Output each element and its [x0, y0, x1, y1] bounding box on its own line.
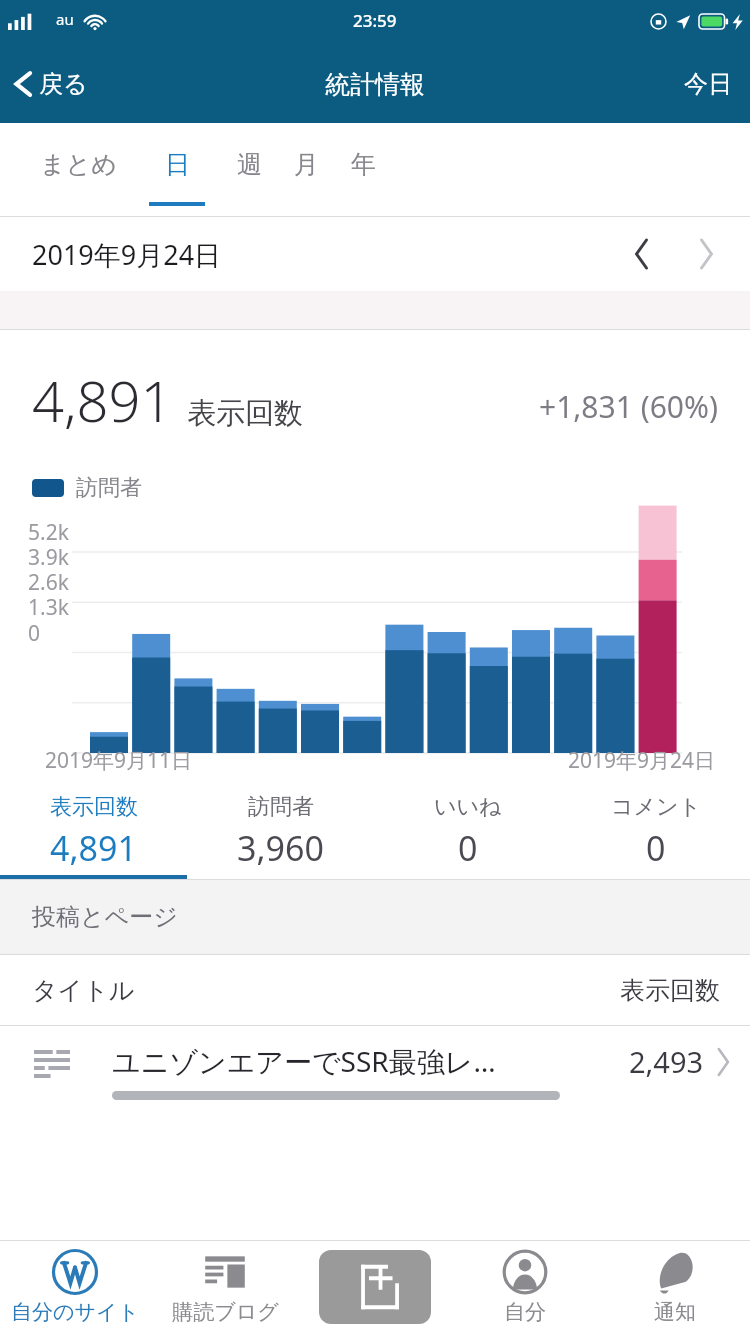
staticText: 2019年9月24日 [32, 236, 222, 273]
button[interactable]: Previous day [618, 228, 666, 280]
staticText: 23:59 [353, 9, 397, 32]
staticText: 1.3k [28, 593, 69, 622]
staticText: いいね [434, 793, 502, 821]
staticText: 投稿とページ [32, 902, 178, 932]
staticText: 週 [237, 149, 262, 180]
staticText: 訪問者 [248, 793, 314, 821]
staticText: 2.6k [28, 568, 69, 597]
staticText: 月 [294, 149, 319, 180]
staticText: 戻る [39, 69, 88, 99]
button[interactable]: いいね [374, 781, 562, 879]
staticText: 自分のサイト [11, 1299, 139, 1325]
button[interactable]: 日 [133, 123, 221, 206]
staticText: 年 [351, 149, 376, 180]
staticText: 2,493 [629, 1042, 704, 1081]
button[interactable]: 戻る [0, 60, 102, 108]
button[interactable]: New post [319, 1250, 431, 1324]
staticText: 4,891 [32, 362, 173, 438]
staticText: 表示回数 [187, 395, 303, 432]
staticText: 表示回数 [620, 975, 720, 1006]
staticText: 統計情報 [325, 69, 425, 100]
button[interactable]: 週 [221, 123, 278, 206]
staticText: 0 [646, 825, 666, 871]
staticText: +1,831 (60%) [539, 386, 718, 427]
staticText: 今日 [684, 69, 732, 99]
staticText: 3,960 [237, 825, 324, 871]
staticText: タイトル [32, 975, 135, 1006]
staticText: 購読ブログ [172, 1299, 279, 1325]
staticText: 日 [165, 149, 190, 180]
staticText: 4,891 [50, 825, 137, 871]
button[interactable]: コメント [562, 781, 750, 879]
staticText: 0 [28, 619, 41, 648]
staticText: au [56, 9, 74, 29]
button[interactable]: 自分 [450, 1240, 600, 1334]
staticText: 0 [458, 825, 478, 871]
staticText: 2019年9月24日 [568, 746, 716, 775]
button[interactable]: 購読ブログ [150, 1240, 300, 1334]
button[interactable]: 年 [335, 123, 392, 206]
staticText: 3.9k [28, 543, 69, 572]
button[interactable]: ユニゾンエアーでSSR最強レ… [0, 1026, 750, 1104]
staticText: 訪問者 [76, 474, 142, 502]
button[interactable]: 通知 [600, 1240, 750, 1334]
staticText: 通知 [654, 1299, 696, 1325]
staticText: 自分 [504, 1299, 546, 1325]
staticText: 2019年9月11日 [45, 746, 193, 775]
staticText: 表示回数 [50, 793, 138, 821]
button[interactable]: 表示回数 [0, 781, 187, 879]
staticText: まとめ [40, 149, 117, 180]
button[interactable]: 今日 [666, 59, 750, 109]
staticText: コメント [611, 793, 702, 821]
staticText: 5.2k [28, 518, 69, 547]
button[interactable]: 月 [278, 123, 335, 206]
button[interactable]: Next day [682, 228, 730, 280]
button[interactable]: 訪問者 [187, 781, 374, 879]
button[interactable]: まとめ [24, 123, 133, 206]
button[interactable]: 自分のサイト [0, 1240, 150, 1334]
staticText: ユニゾンエアーでSSR最強レ… [112, 1042, 496, 1080]
